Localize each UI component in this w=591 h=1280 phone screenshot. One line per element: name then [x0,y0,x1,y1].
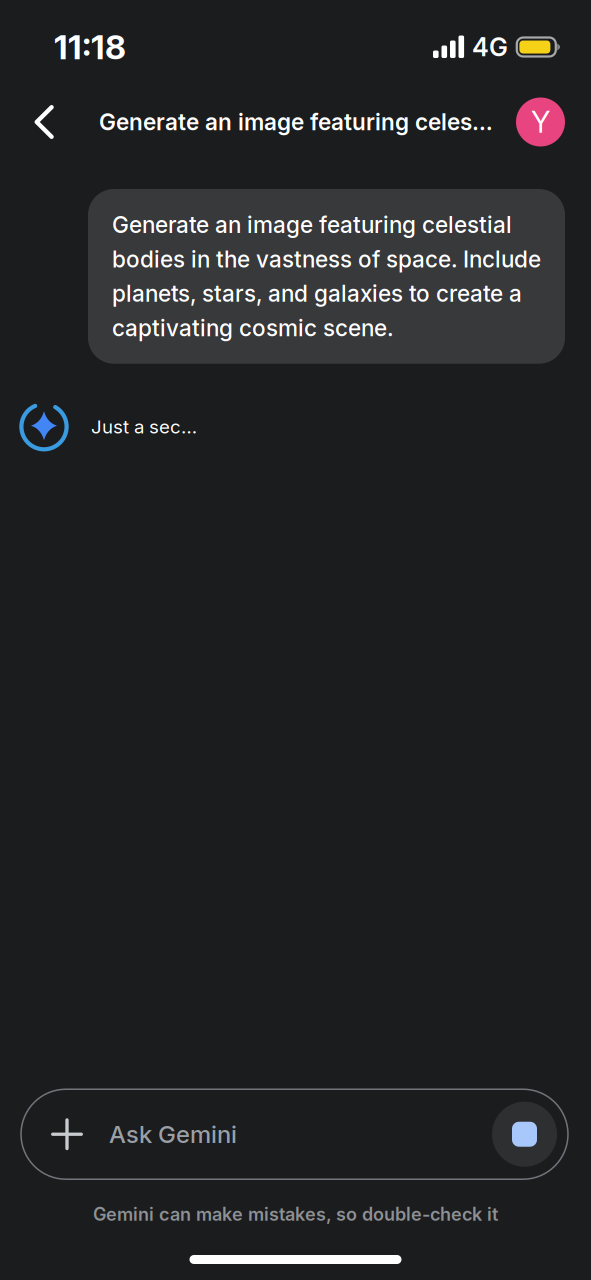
button[interactable]: Back [22,94,66,150]
button[interactable]: Account [516,97,565,146]
staticText: 11:18 [54,27,126,67]
staticText: Gemini can make mistakes, so double-chec… [93,1203,498,1225]
button[interactable]: Ask Gemini [21,1089,568,1179]
staticText: Ask Gemini [109,1120,237,1149]
staticText: Generate an image featuring celest… [99,108,493,136]
staticText: Generate an image featuring celestial bo… [112,211,541,342]
staticText: Y [531,104,550,140]
staticText: Just a sec… [91,415,197,438]
staticText: 4G [472,32,508,62]
